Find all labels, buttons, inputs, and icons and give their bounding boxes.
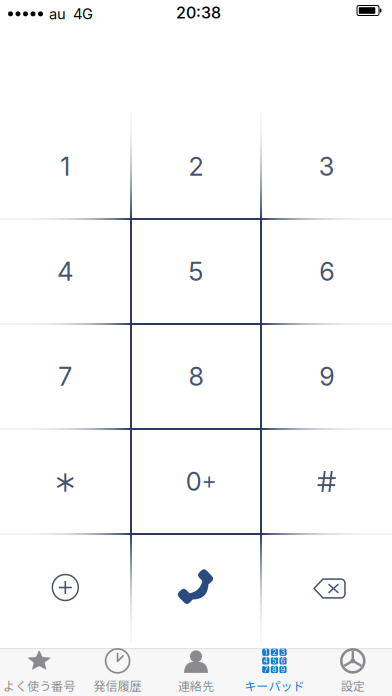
staticText: 1 [60,151,70,182]
staticText: 1 [264,648,267,657]
staticText: au [49,5,66,23]
button[interactable]: Pound [261,429,392,534]
staticText: 7 [58,361,72,392]
button[interactable]: よく使う番号 [0,649,78,696]
button[interactable]: 0 [131,429,261,534]
staticText: 9 [280,665,285,674]
staticText: 連絡先 [178,677,214,694]
staticText: 5 [272,656,277,665]
button[interactable]: 5 [131,219,261,324]
button[interactable]: 2 [131,114,261,219]
button[interactable]: 8 [131,324,261,429]
staticText: 8 [188,361,203,392]
staticText: 4 [57,256,73,287]
staticText: 3 [319,151,335,182]
button[interactable]: 発信履歴 [78,649,157,696]
button[interactable]: Delete [261,534,392,641]
button[interactable]: 1 [235,649,314,696]
button[interactable]: Call [131,534,261,641]
staticText: 2 [188,151,203,182]
staticText: よく使う番号 [3,677,75,694]
staticText: 0 [186,466,202,497]
staticText: 2 [272,648,277,657]
staticText: 9 [319,361,334,392]
staticText: 6 [280,656,285,665]
button[interactable]: 1 [0,114,131,219]
button[interactable]: 7 [0,324,131,429]
button[interactable]: 設定 [314,649,392,696]
button[interactable]: 連絡先 [157,649,235,696]
staticText: 4G [73,5,93,23]
staticText: 発信履歴 [94,677,142,694]
button[interactable]: Star [0,429,131,534]
staticText: 20:38 [176,3,221,22]
button[interactable]: 6 [261,219,392,324]
button[interactable]: 4 [0,219,131,324]
staticText: 設定 [341,677,365,694]
staticText: キーパッド [244,677,304,694]
staticText: 3 [280,648,285,657]
button[interactable]: 9 [261,324,392,429]
staticText: 5 [188,256,203,287]
staticText: 8 [272,665,277,674]
staticText: 7 [264,665,268,674]
staticText: 6 [319,256,334,287]
staticText: 4 [263,656,268,665]
button[interactable]: 3 [261,114,392,219]
button[interactable]: Add Number [0,534,131,641]
